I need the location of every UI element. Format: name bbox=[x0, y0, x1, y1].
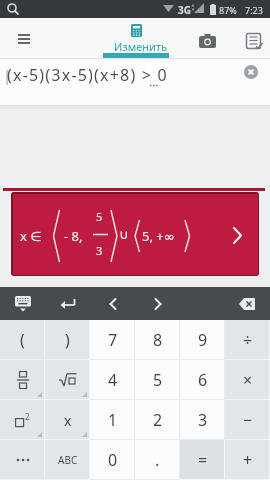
staticText: 9 bbox=[198, 329, 208, 351]
staticText: ÷ bbox=[243, 329, 253, 351]
staticText: 3G bbox=[178, 3, 191, 17]
button[interactable]: x ∈ bbox=[11, 192, 259, 276]
button[interactable] bbox=[0, 360, 45, 400]
button[interactable] bbox=[45, 360, 90, 400]
staticText: 3 bbox=[96, 243, 103, 258]
staticText: | bbox=[3, 65, 12, 85]
staticText: x bbox=[64, 411, 72, 430]
button[interactable] bbox=[240, 28, 268, 54]
button[interactable]: − bbox=[225, 400, 270, 440]
button[interactable]: 7 bbox=[90, 320, 135, 360]
staticText: 1 bbox=[108, 409, 118, 431]
button[interactable] bbox=[45, 287, 90, 320]
staticText: ( bbox=[20, 329, 25, 351]
staticText: + bbox=[243, 449, 253, 471]
staticText: 5 bbox=[153, 369, 163, 391]
staticText: = bbox=[198, 449, 208, 471]
staticText: − bbox=[243, 409, 253, 431]
button[interactable]: 6 bbox=[180, 360, 225, 400]
button[interactable] bbox=[194, 28, 222, 54]
button[interactable]: 4 bbox=[90, 360, 135, 400]
button[interactable]: 2 bbox=[0, 400, 45, 440]
button[interactable]: ( bbox=[0, 320, 45, 360]
button[interactable] bbox=[225, 287, 270, 320]
staticText: 4 bbox=[108, 369, 118, 391]
staticText: × bbox=[243, 369, 253, 391]
staticText: ABC bbox=[58, 453, 78, 467]
button[interactable]: ÷ bbox=[225, 320, 270, 360]
button[interactable] bbox=[0, 440, 45, 480]
staticText: 7 bbox=[108, 329, 118, 351]
button[interactable]: 2 bbox=[135, 400, 180, 440]
staticText: 8 bbox=[153, 329, 163, 351]
button[interactable]: 1 bbox=[90, 400, 135, 440]
button[interactable]: = bbox=[180, 440, 225, 480]
button[interactable]: ) bbox=[45, 320, 90, 360]
staticText: x ∈ bbox=[20, 227, 42, 245]
button[interactable]: . bbox=[135, 440, 180, 480]
button[interactable] bbox=[90, 287, 135, 320]
staticText: 7:23 bbox=[245, 4, 263, 16]
button[interactable] bbox=[237, 58, 267, 88]
staticText: Изменить bbox=[114, 39, 167, 54]
staticText: - 8, bbox=[64, 227, 83, 245]
button[interactable]: Изменить bbox=[103, 18, 188, 58]
staticText: 2 bbox=[25, 411, 30, 422]
button[interactable]: ABC bbox=[45, 440, 90, 480]
staticText: ∪ bbox=[119, 227, 129, 242]
staticText: 87% bbox=[219, 4, 237, 16]
button[interactable] bbox=[0, 287, 45, 320]
button[interactable]: 9 bbox=[180, 320, 225, 360]
staticText: 3 bbox=[198, 409, 208, 431]
button[interactable] bbox=[135, 287, 180, 320]
staticText: 5, +∞ bbox=[142, 227, 175, 245]
staticText: 2 bbox=[153, 409, 163, 431]
staticText: 6 bbox=[198, 369, 208, 391]
staticText: 0 bbox=[108, 449, 118, 471]
button[interactable]: 8 bbox=[135, 320, 180, 360]
staticText: ) bbox=[65, 329, 70, 351]
button[interactable]: 5 bbox=[135, 360, 180, 400]
button[interactable]: x bbox=[45, 400, 90, 440]
staticText: . bbox=[155, 449, 160, 471]
button[interactable]: 3 bbox=[180, 400, 225, 440]
button[interactable]: 0 bbox=[90, 440, 135, 480]
staticText: (x-5)(3x-5)(x+8) > 0 bbox=[7, 64, 168, 86]
button[interactable]: + bbox=[225, 440, 270, 480]
staticText: 5 bbox=[96, 209, 103, 224]
button[interactable]: × bbox=[225, 360, 270, 400]
button[interactable] bbox=[10, 26, 38, 52]
